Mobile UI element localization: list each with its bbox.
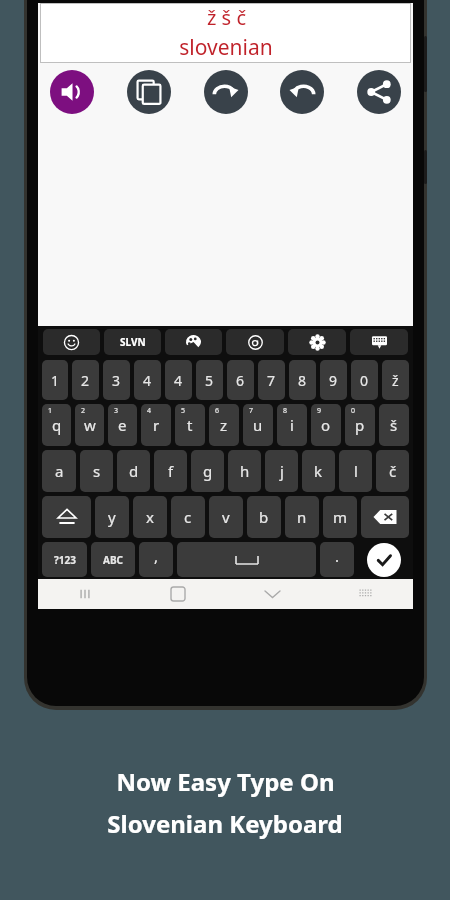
- button[interactable]: m: [323, 496, 357, 538]
- button[interactable]: c: [171, 496, 205, 538]
- staticText: v: [222, 507, 230, 527]
- staticText: 4: [174, 371, 183, 390]
- staticText: z: [220, 415, 228, 435]
- button[interactable]: Theme: [165, 329, 222, 355]
- staticText: 8: [298, 371, 307, 390]
- button[interactable]: Backspace: [361, 496, 409, 538]
- button[interactable]: a: [42, 450, 76, 492]
- button[interactable]: Undo: [280, 70, 324, 114]
- staticText: 5: [181, 406, 186, 416]
- button[interactable]: Redo: [204, 70, 248, 114]
- staticText: j: [280, 461, 284, 481]
- button[interactable]: 3: [103, 360, 130, 400]
- button[interactable]: 4: [165, 360, 192, 400]
- staticText: f: [168, 461, 174, 481]
- staticText: l: [354, 461, 358, 481]
- button[interactable]: Shift: [42, 496, 91, 538]
- staticText: x: [146, 507, 154, 527]
- button[interactable]: Share: [357, 70, 401, 114]
- button[interactable]: 6: [227, 360, 254, 400]
- button[interactable]: p: [345, 404, 375, 446]
- button[interactable]: č: [376, 450, 409, 492]
- staticText: 0: [351, 406, 356, 416]
- staticText: q: [52, 415, 62, 435]
- button[interactable]: 9: [320, 360, 347, 400]
- button[interactable]: Settings: [288, 329, 346, 355]
- staticText: s: [93, 461, 101, 481]
- button[interactable]: s: [80, 450, 113, 492]
- button[interactable]: w: [75, 404, 104, 446]
- button[interactable]: x: [133, 496, 167, 538]
- button[interactable]: At: [226, 329, 284, 355]
- button[interactable]: u: [243, 404, 273, 446]
- button[interactable]: š: [379, 404, 409, 446]
- button[interactable]: Speak: [50, 70, 94, 114]
- button[interactable]: Enter: [367, 543, 401, 577]
- staticText: 9: [329, 371, 338, 390]
- staticText: ž: [392, 371, 399, 390]
- button[interactable]: 8: [289, 360, 316, 400]
- button[interactable]: v: [209, 496, 243, 538]
- staticText: y: [108, 507, 116, 527]
- staticText: e: [118, 415, 127, 435]
- button[interactable]: f: [154, 450, 187, 492]
- button[interactable]: Recents: [38, 579, 131, 609]
- button[interactable]: .: [320, 542, 354, 577]
- staticText: t: [187, 415, 193, 435]
- button[interactable]: y: [95, 496, 129, 538]
- button[interactable]: i: [277, 404, 307, 446]
- button[interactable]: ABC: [91, 542, 135, 577]
- staticText: 2: [81, 371, 90, 390]
- button[interactable]: SLVN: [104, 329, 161, 355]
- staticText: Now Easy Type On: [116, 765, 335, 798]
- button[interactable]: Home: [131, 579, 225, 609]
- button[interactable]: t: [175, 404, 205, 446]
- button[interactable]: 0: [351, 360, 378, 400]
- button[interactable]: d: [117, 450, 150, 492]
- button[interactable]: l: [339, 450, 372, 492]
- button[interactable]: z: [209, 404, 239, 446]
- staticText: ?123: [54, 553, 76, 567]
- staticText: 6: [215, 406, 220, 416]
- button[interactable]: h: [228, 450, 261, 492]
- button[interactable]: k: [302, 450, 335, 492]
- button[interactable]: Hide keyboard: [225, 579, 319, 609]
- staticText: p: [355, 415, 365, 435]
- button[interactable]: 1: [42, 360, 68, 400]
- button[interactable]: Space: [177, 542, 316, 577]
- button[interactable]: Switch keyboard: [319, 579, 413, 609]
- button[interactable]: e: [108, 404, 137, 446]
- staticText: 7: [267, 371, 276, 390]
- staticText: 1: [48, 406, 53, 416]
- button[interactable]: q: [42, 404, 71, 446]
- staticText: 6: [236, 371, 245, 390]
- button[interactable]: Keyboard: [350, 329, 408, 355]
- button[interactable]: 5: [196, 360, 223, 400]
- staticText: n: [297, 507, 307, 527]
- button[interactable]: Copy: [127, 70, 171, 114]
- staticText: o: [321, 415, 331, 435]
- staticText: slovenian: [179, 33, 273, 62]
- staticText: h: [240, 461, 250, 481]
- button[interactable]: r: [141, 404, 171, 446]
- button[interactable]: ž š č: [40, 3, 411, 63]
- staticText: 9: [317, 406, 322, 416]
- button[interactable]: 4: [134, 360, 161, 400]
- button[interactable]: b: [247, 496, 281, 538]
- staticText: w: [84, 415, 96, 435]
- button[interactable]: n: [285, 496, 319, 538]
- button[interactable]: ?123: [42, 542, 87, 577]
- button[interactable]: 2: [72, 360, 99, 400]
- button[interactable]: ,: [139, 542, 173, 577]
- button[interactable]: Emoji: [43, 329, 100, 355]
- button[interactable]: 7: [258, 360, 285, 400]
- staticText: i: [290, 415, 294, 435]
- staticText: ,: [154, 546, 159, 566]
- button[interactable]: g: [191, 450, 224, 492]
- button[interactable]: j: [265, 450, 298, 492]
- button[interactable]: ž: [382, 360, 409, 400]
- button[interactable]: o: [311, 404, 341, 446]
- staticText: u: [253, 415, 263, 435]
- staticText: 1: [51, 371, 60, 390]
- staticText: 4: [147, 406, 152, 416]
